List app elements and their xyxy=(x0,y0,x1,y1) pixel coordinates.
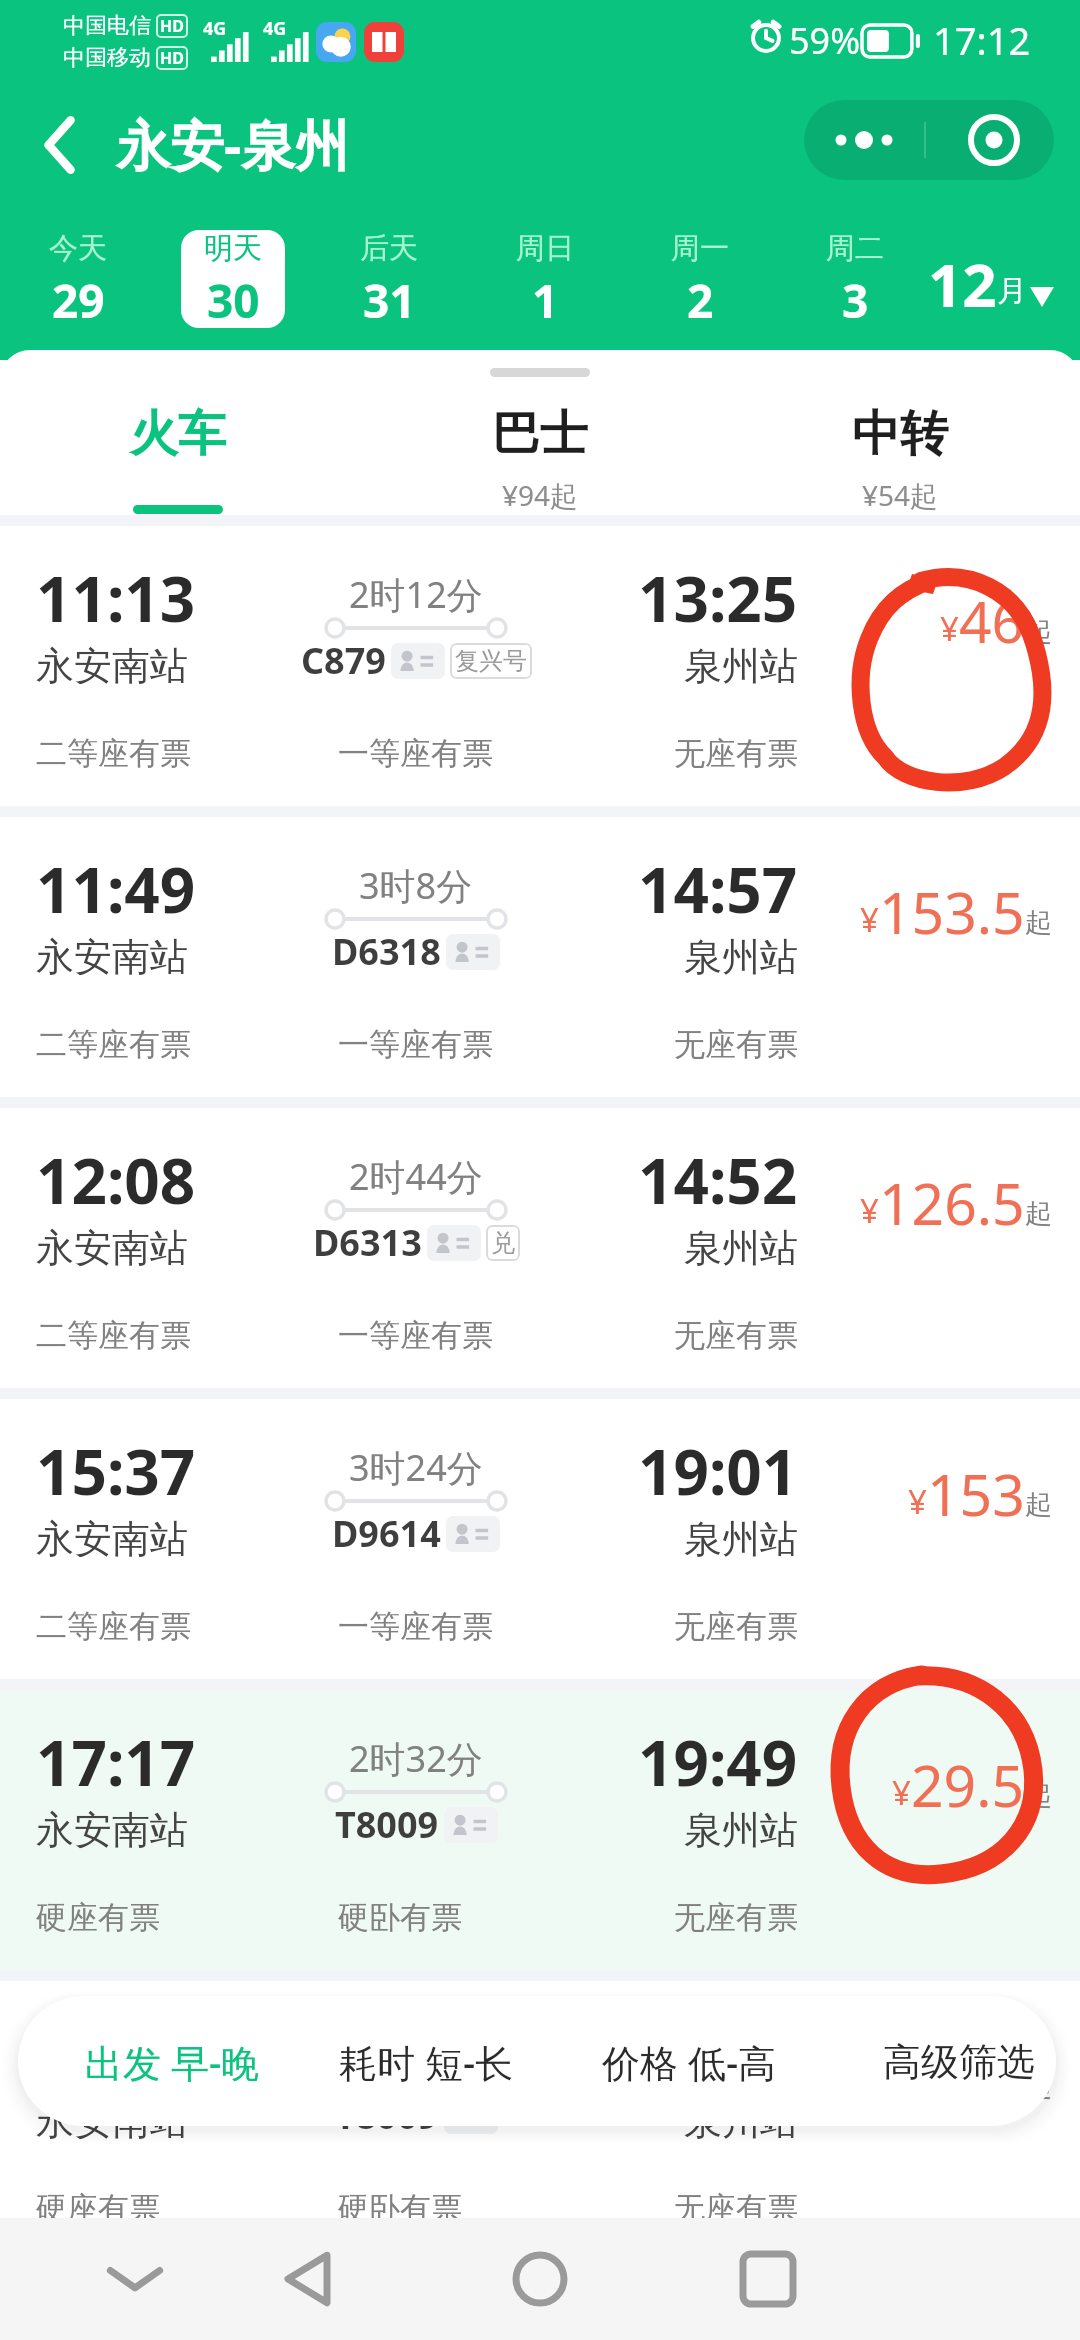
staticText: 高级筛选 xyxy=(883,2038,1035,2086)
staticText: 中国移动 xyxy=(63,44,151,72)
staticText: D6318 xyxy=(332,927,441,976)
staticText: 31 xyxy=(363,269,416,328)
staticText: 126.5 xyxy=(879,1164,1025,1242)
staticText: 起 xyxy=(1025,1488,1052,1522)
staticText: 永安南站 xyxy=(36,933,188,981)
staticText: 后天 xyxy=(360,230,418,267)
staticText: 14:52 xyxy=(638,1138,798,1222)
staticText: 12 xyxy=(928,243,997,321)
staticText: 无座有票 xyxy=(674,2189,798,2228)
button[interactable]: 后天 xyxy=(337,230,441,328)
staticText: 4G xyxy=(203,16,227,41)
staticText: 一等座有票 xyxy=(338,1607,493,1646)
staticText: 价格 低-高 xyxy=(602,2036,777,2088)
staticText: 起 xyxy=(1025,906,1052,940)
button[interactable]: 12:08 xyxy=(0,1108,1080,1388)
button[interactable]: Back xyxy=(228,2218,388,2340)
staticText: 无座有票 xyxy=(674,1607,798,1646)
staticText: 月 xyxy=(997,272,1027,310)
staticText: 泉州站 xyxy=(684,2097,798,2145)
staticText: D9614 xyxy=(332,1509,441,1558)
staticText: HD xyxy=(160,15,184,37)
staticText: T8009 xyxy=(335,2091,439,2140)
staticText: 永安-泉州 xyxy=(116,107,350,181)
staticText: 13:25 xyxy=(638,556,798,640)
button[interactable]: Close mini program xyxy=(934,100,1054,180)
staticText: 泉州站 xyxy=(684,1224,798,1272)
button[interactable]: Recent apps xyxy=(688,2218,848,2340)
staticText: 无座有票 xyxy=(674,1898,798,1937)
button[interactable]: 出发 早-晚 xyxy=(68,2012,276,2112)
button[interactable]: 巴士 xyxy=(410,404,670,534)
staticText: ¥ xyxy=(860,897,879,942)
button[interactable]: 周二 xyxy=(803,230,907,328)
button[interactable]: 今天 xyxy=(26,230,130,328)
button[interactable]: 价格 低-高 xyxy=(585,2012,793,2112)
staticText: 29.5 xyxy=(911,2037,1025,2115)
staticText: 泉州站 xyxy=(684,1806,798,1854)
button[interactable]: 高级筛选 xyxy=(855,2012,1056,2112)
staticText: 兑 xyxy=(491,1228,515,1258)
button[interactable]: 中转 xyxy=(770,404,1030,534)
staticText: 30 xyxy=(207,269,260,328)
staticText: 2 xyxy=(687,269,714,328)
button[interactable]: 11:49 xyxy=(0,817,1080,1097)
button[interactable]: 耗时 短-长 xyxy=(322,2012,530,2112)
button[interactable]: 15:37 xyxy=(0,1399,1080,1679)
button[interactable]: 明天 xyxy=(181,230,285,328)
staticText: 泉州站 xyxy=(684,933,798,981)
staticText: 59% xyxy=(789,16,861,65)
staticText: 永安南站 xyxy=(36,642,188,690)
staticText: ¥94起 xyxy=(502,476,579,514)
button[interactable]: Back xyxy=(12,100,108,190)
staticText: 二等座有票 xyxy=(36,734,191,773)
staticText: ¥ xyxy=(892,1770,911,1815)
staticText: 永安南站 xyxy=(36,1515,188,1563)
staticText: 11:13 xyxy=(36,556,196,640)
staticText: 3时24分 xyxy=(349,1443,483,1492)
staticText: 永安南站 xyxy=(36,1224,188,1272)
staticText: 中国电信 xyxy=(63,12,151,40)
button[interactable]: 17:17 xyxy=(0,1981,1080,2261)
button[interactable]: 11:13 xyxy=(0,526,1080,806)
staticText: 起 xyxy=(1025,615,1052,649)
staticText: 起 xyxy=(1025,1779,1052,1813)
button[interactable]: 周日 xyxy=(493,230,597,328)
button[interactable]: 周一 xyxy=(648,230,752,328)
button[interactable]: Hide keyboard xyxy=(55,2218,215,2340)
staticText: 1 xyxy=(532,269,559,328)
staticText: 出发 早-晚 xyxy=(85,2036,260,2088)
staticText: 硬座有票 xyxy=(36,2189,160,2228)
staticText: T8009 xyxy=(335,1800,439,1849)
button[interactable]: 12 xyxy=(928,243,1054,321)
staticText: 周一 xyxy=(671,230,729,267)
staticText: 一等座有票 xyxy=(338,1025,493,1064)
staticText: HD xyxy=(160,47,184,69)
staticText: 14:57 xyxy=(638,847,798,931)
button[interactable]: 火车 xyxy=(48,404,308,534)
staticText: 周二 xyxy=(826,230,884,267)
staticText: 2时32分 xyxy=(349,1734,483,1783)
button[interactable]: 17:17 xyxy=(0,1690,1080,1970)
button[interactable]: Home xyxy=(460,2218,620,2340)
staticText: 153 xyxy=(927,1455,1025,1533)
button[interactable]: More options xyxy=(804,100,924,180)
staticText: 永安南站 xyxy=(36,2097,188,2145)
staticText: C879 xyxy=(301,636,386,685)
staticText: 起 xyxy=(1025,2070,1052,2104)
staticText: 二等座有票 xyxy=(36,1025,191,1064)
staticText: ¥54起 xyxy=(862,476,939,514)
staticText: 起 xyxy=(1025,1197,1052,1231)
staticText: 无座有票 xyxy=(674,1025,798,1064)
staticText: 硬卧有票 xyxy=(338,1898,462,1937)
staticText: 3 xyxy=(842,269,869,328)
staticText: 一等座有票 xyxy=(338,734,493,773)
staticText: 12:08 xyxy=(36,1138,196,1222)
staticText: 一等座有票 xyxy=(338,1316,493,1355)
staticText: 2时12分 xyxy=(349,570,483,619)
staticText: 17:17 xyxy=(36,2011,196,2095)
staticText: ¥ xyxy=(892,2061,911,2106)
staticText: 火车 xyxy=(130,404,226,464)
staticText: 无座有票 xyxy=(674,1316,798,1355)
staticText: ¥ xyxy=(908,1479,927,1524)
